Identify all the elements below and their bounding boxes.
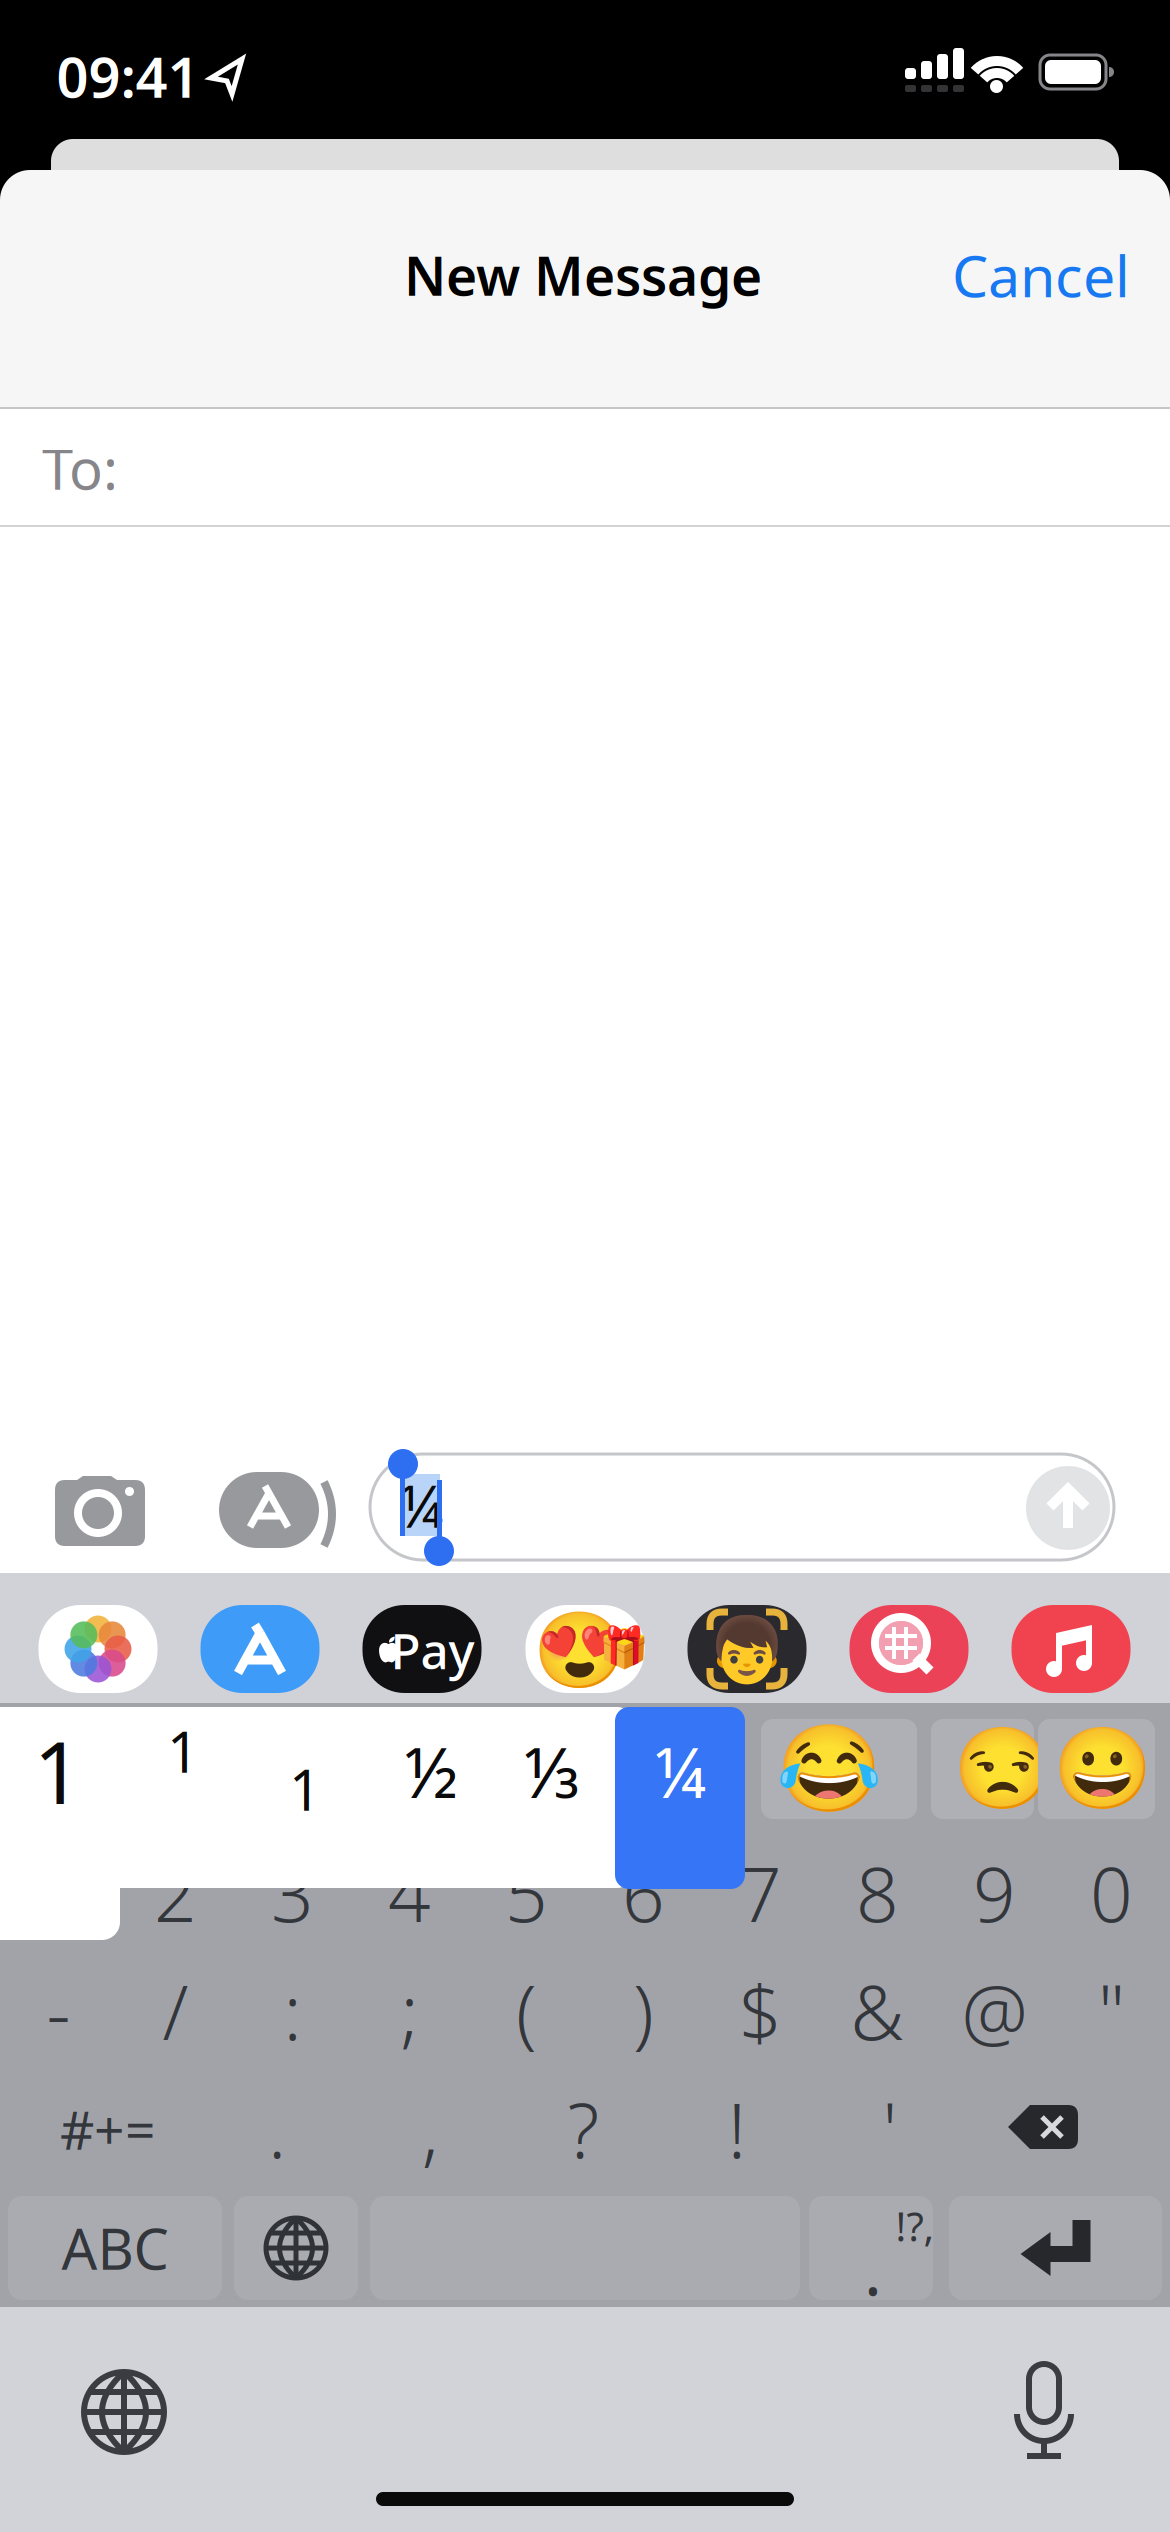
staticText: ¼ (654, 1725, 706, 1817)
button[interactable]: Photos (38, 1605, 157, 1693)
staticText: 🎁 (598, 1624, 648, 1670)
button[interactable]: Delete (1008, 2103, 1078, 2151)
staticText: 😀 (1053, 1723, 1153, 1815)
staticText: @ (961, 1961, 1027, 2061)
button[interactable]: Apple Pay (362, 1605, 481, 1693)
button[interactable]: #+= (28, 2077, 188, 2181)
button[interactable]: . (225, 2077, 329, 2181)
staticText: 09:41 (56, 39, 199, 113)
staticText: #+= (60, 2094, 156, 2164)
button[interactable]: #images (849, 1605, 968, 1693)
staticText: 1 (167, 1714, 199, 1788)
button[interactable]: 1 (255, 1719, 355, 1859)
button[interactable]: . (809, 2196, 933, 2300)
staticText: ⅓ (524, 1725, 582, 1817)
button[interactable]: iMessage apps (207, 1472, 331, 1548)
button[interactable]: App Store (200, 1605, 319, 1693)
staticText: ; (400, 1961, 418, 2061)
staticText: Cancel (952, 237, 1130, 313)
button[interactable]: Next keyboard (234, 2196, 358, 2300)
staticText: 👦 (706, 1613, 786, 1686)
button[interactable]: : (240, 1959, 344, 2063)
staticText: 😂 (776, 1720, 882, 1818)
staticText: $ (739, 1961, 782, 2061)
staticText: ' (882, 2079, 897, 2179)
staticText: - (46, 1961, 70, 2061)
staticText: . (864, 2226, 882, 2314)
button[interactable]: 5 (474, 1841, 578, 1945)
staticText: 4 (388, 1843, 431, 1943)
staticText: 😍 (533, 1607, 626, 1693)
staticText: 7 (739, 1843, 782, 1943)
staticText: ) (633, 1961, 654, 2061)
button[interactable]: ⅓ (498, 1701, 608, 1841)
button[interactable]: @ (942, 1959, 1046, 2063)
button[interactable]: ; (357, 1959, 461, 2063)
staticText: 9 (973, 1843, 1016, 1943)
button[interactable]: 0 (1059, 1841, 1163, 1945)
button[interactable]: , (378, 2077, 482, 2181)
button[interactable]: $ (708, 1959, 812, 2063)
staticText: !?, (895, 2199, 934, 2252)
button[interactable]: ! (685, 2077, 789, 2181)
button[interactable]: Dictation (1013, 2364, 1075, 2460)
button[interactable]: Emoji candidate 😒 (931, 1719, 1034, 1819)
staticText: ! (728, 2079, 746, 2179)
button[interactable]: ABC (8, 2196, 222, 2300)
button[interactable]: Memoji (687, 1605, 806, 1693)
button[interactable]: Emoji candidate 😂 (761, 1719, 917, 1819)
button[interactable]: 3 (240, 1841, 344, 1945)
staticText: New Message (404, 240, 762, 310)
staticText: : (283, 1961, 301, 2061)
button[interactable]: Camera (55, 1474, 145, 1548)
staticText: 5 (505, 1843, 548, 1943)
button[interactable]: 1 (133, 1681, 233, 1821)
button[interactable]: 4 (357, 1841, 461, 1945)
staticText: ½ (404, 1725, 457, 1817)
button[interactable]: Next keyboard (82, 2370, 166, 2454)
button[interactable]: Music (1011, 1605, 1130, 1693)
staticText: 3 (271, 1843, 314, 1943)
staticText: Pay (390, 1617, 474, 1683)
staticText: 😒 (953, 1723, 1053, 1815)
staticText: / (162, 1961, 188, 2061)
button[interactable]: 9 (942, 1841, 1046, 1945)
staticText: To: (42, 431, 118, 505)
button[interactable]: ¼ (620, 1701, 740, 1841)
button[interactable]: 1 (3, 1701, 113, 1841)
button[interactable]: ' (838, 2077, 942, 2181)
staticText: 1 (33, 1714, 82, 1828)
button[interactable]: ( (474, 1959, 578, 2063)
staticText: , (422, 2079, 439, 2179)
button[interactable]: " (1059, 1959, 1163, 2063)
button[interactable]: 2 (123, 1841, 227, 1945)
staticText: 2 (154, 1843, 197, 1943)
staticText: ABC (61, 2211, 168, 2285)
staticText: & (850, 1961, 904, 2061)
button[interactable]: & (825, 1959, 929, 2063)
staticText: ( (516, 1961, 537, 2061)
staticText: 6 (622, 1843, 665, 1943)
staticText: 1 (289, 1752, 321, 1826)
button[interactable]: 8 (825, 1841, 929, 1945)
staticText: " (1098, 1961, 1125, 2061)
staticText: 8 (856, 1843, 899, 1943)
button[interactable]: Cancel (931, 225, 1151, 325)
button[interactable]: Memoji Stickers (525, 1605, 644, 1693)
staticText: ¼ (399, 1466, 443, 1544)
button[interactable]: Return (949, 2196, 1162, 2300)
button[interactable]: Send (1026, 1466, 1110, 1550)
staticText: . (268, 2079, 286, 2179)
staticText: ? (567, 2079, 599, 2179)
button[interactable]: - (6, 1959, 110, 2063)
button[interactable]: 6 (591, 1841, 695, 1945)
button[interactable]: 7 (708, 1841, 812, 1945)
button[interactable]: ) (591, 1959, 695, 2063)
staticText: 0 (1090, 1843, 1133, 1943)
button[interactable]: / (123, 1959, 227, 2063)
button[interactable]: Emoji candidate 😀 (1038, 1719, 1155, 1819)
button[interactable]: ? (531, 2077, 635, 2181)
button[interactable]: ½ (376, 1701, 486, 1841)
